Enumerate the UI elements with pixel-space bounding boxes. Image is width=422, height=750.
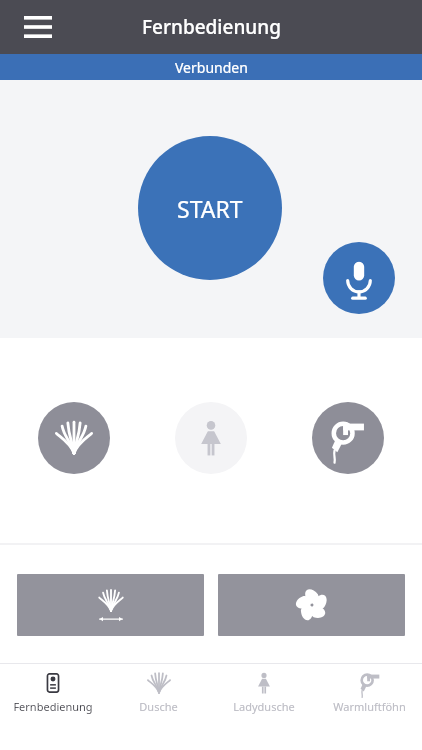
button[interactable]: Warmluftföhn <box>312 402 384 474</box>
staticText: Warmluftföhn <box>333 699 406 714</box>
button[interactable]: Ladydusche <box>211 664 317 714</box>
button[interactable]: Menu <box>14 3 62 51</box>
staticText: Verbunden <box>175 58 248 77</box>
button[interactable]: Ladydusche <box>175 402 247 474</box>
staticText: Fernbedienung <box>142 14 281 40</box>
button[interactable]: Gebläse <box>218 574 405 636</box>
button[interactable]: START <box>138 136 282 280</box>
button[interactable]: Dusche <box>106 664 211 714</box>
staticText: Ladydusche <box>233 699 295 714</box>
staticText: START <box>177 193 243 224</box>
button[interactable]: Duschstrahl verstellen <box>17 574 204 636</box>
staticText: Dusche <box>139 699 178 714</box>
button[interactable]: Dusche <box>38 402 110 474</box>
button[interactable]: Warmluftföhn <box>317 664 422 714</box>
button[interactable]: Voice control <box>323 242 395 314</box>
button[interactable]: Fernbedienung <box>0 664 106 714</box>
staticText: Fernbedienung <box>13 699 93 714</box>
